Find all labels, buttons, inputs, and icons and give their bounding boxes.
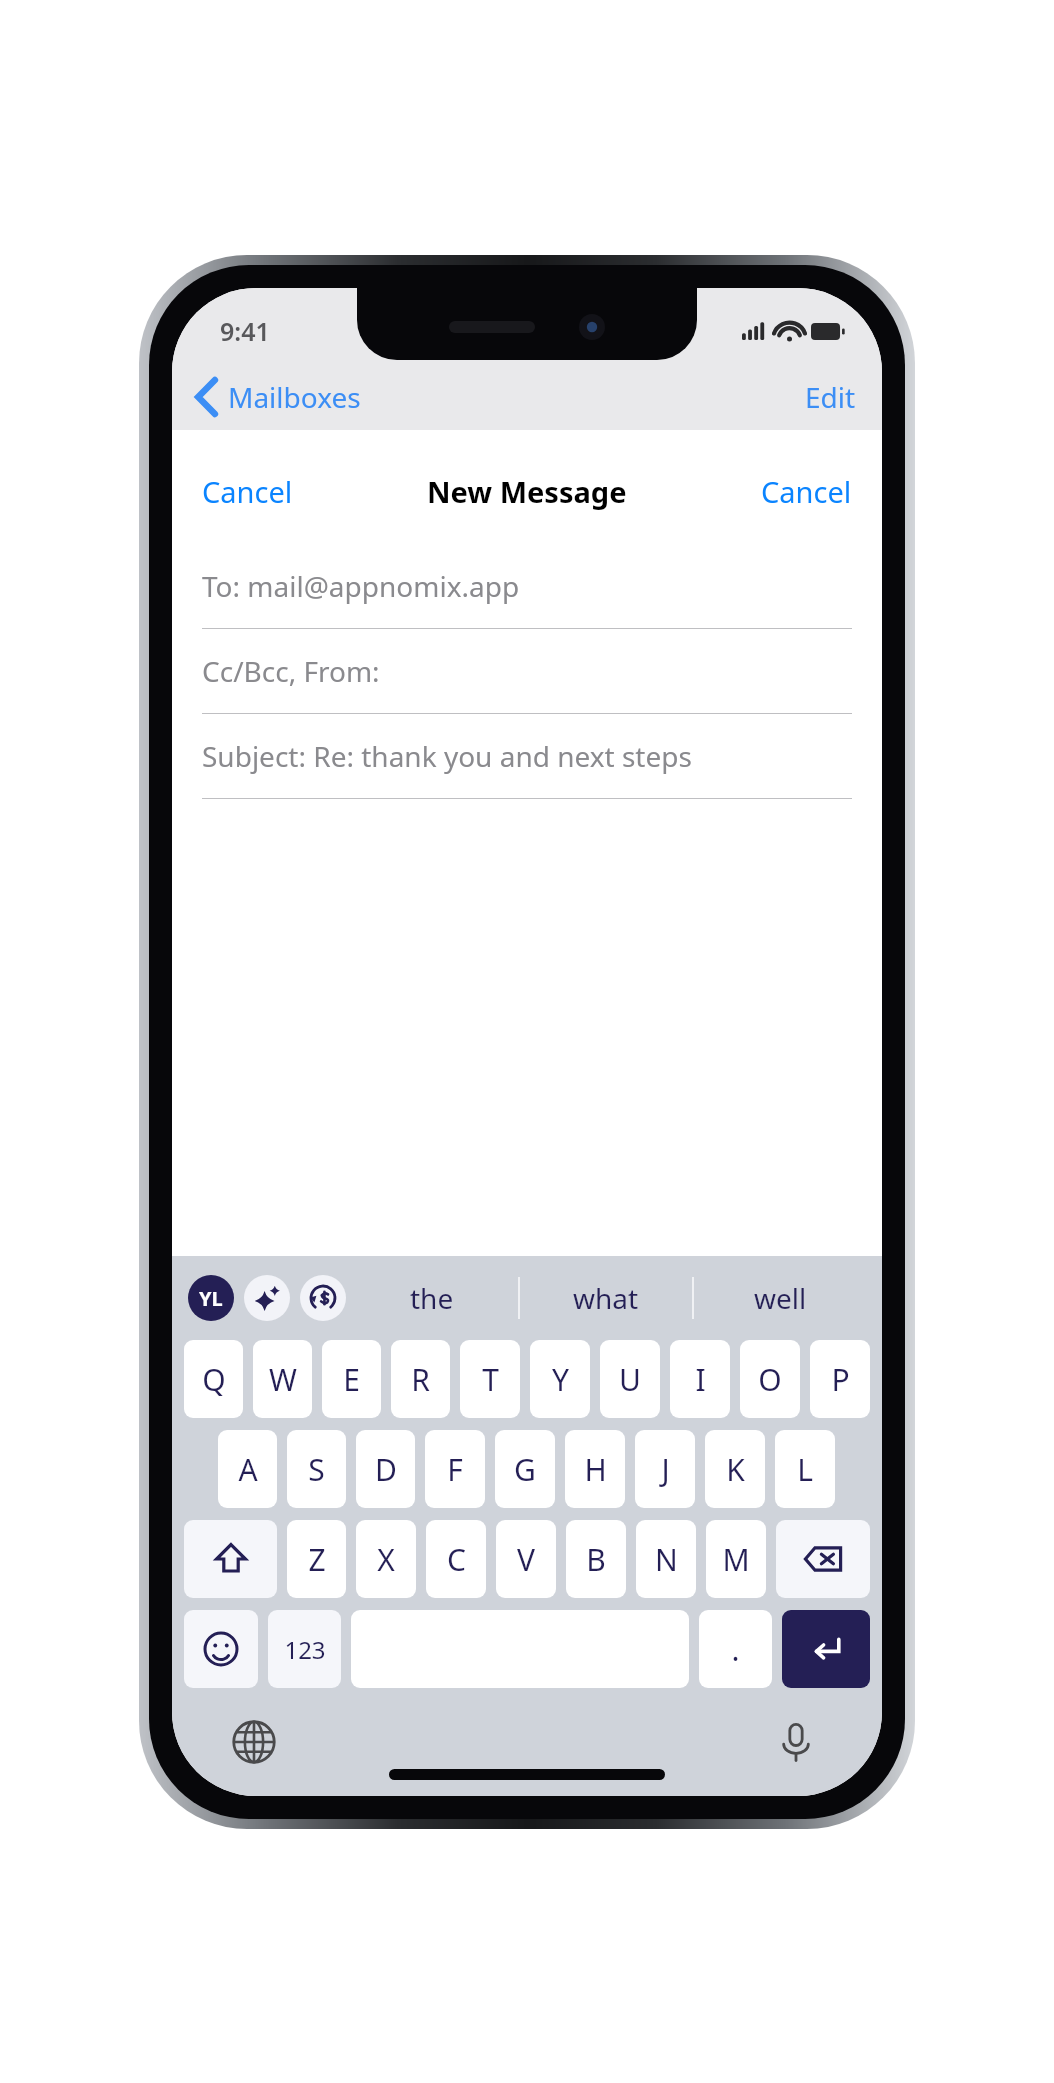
- staticText: .: [731, 1629, 740, 1670]
- button[interactable]: I: [670, 1340, 730, 1418]
- staticText: K: [726, 1449, 745, 1490]
- button[interactable]: Q: [184, 1340, 243, 1418]
- button[interactable]: Emoji: [184, 1610, 258, 1688]
- staticText: H: [584, 1449, 607, 1490]
- button[interactable]: Cancel: [761, 472, 852, 511]
- button[interactable]: C: [426, 1520, 486, 1598]
- staticText: C: [447, 1539, 466, 1580]
- staticText: X: [377, 1539, 395, 1580]
- button[interactable]: E: [322, 1340, 381, 1418]
- staticText: well: [754, 1279, 807, 1317]
- staticText: J: [661, 1449, 670, 1490]
- button[interactable]: J: [635, 1430, 695, 1508]
- button[interactable]: Y: [530, 1340, 590, 1418]
- button[interactable]: U: [600, 1340, 660, 1418]
- staticText: Mailboxes: [228, 378, 361, 416]
- button[interactable]: Change keyboard: [228, 1716, 280, 1768]
- staticText: U: [619, 1359, 641, 1400]
- staticText: W: [269, 1359, 297, 1400]
- button[interactable]: O: [740, 1340, 800, 1418]
- button[interactable]: Cancel: [202, 472, 293, 511]
- button[interactable]: AI suggestions: [244, 1275, 290, 1321]
- button[interactable]: Cc/Bcc, From:: [172, 629, 882, 714]
- button[interactable]: Shift: [184, 1520, 277, 1598]
- button[interactable]: Cashback: [300, 1275, 346, 1321]
- button[interactable]: W: [253, 1340, 312, 1418]
- staticText: V: [517, 1539, 535, 1580]
- button[interactable]: T: [460, 1340, 520, 1418]
- button[interactable]: .: [699, 1610, 772, 1688]
- staticText: Y: [552, 1359, 569, 1400]
- staticText: E: [343, 1359, 360, 1400]
- staticText: Subject: Re: thank you and next steps: [202, 737, 692, 775]
- button[interactable]: H: [565, 1430, 625, 1508]
- button[interactable]: A: [218, 1430, 277, 1508]
- button[interactable]: Backspace: [776, 1520, 870, 1598]
- button[interactable]: the: [346, 1256, 518, 1340]
- staticText: what: [573, 1279, 639, 1317]
- button[interactable]: L: [775, 1430, 835, 1508]
- button[interactable]: well: [694, 1256, 866, 1340]
- button[interactable]: R: [391, 1340, 450, 1418]
- staticText: B: [586, 1539, 606, 1580]
- button[interactable]: Return: [782, 1610, 870, 1688]
- staticText: Q: [202, 1359, 226, 1400]
- button[interactable]: Subject: Re: thank you and next steps: [172, 714, 882, 799]
- staticText: New Message: [427, 472, 627, 511]
- staticText: Cc/Bcc, From:: [202, 652, 380, 690]
- staticText: Cancel: [202, 472, 293, 511]
- staticText: A: [238, 1449, 258, 1490]
- staticText: 123: [284, 1633, 326, 1666]
- staticText: M: [722, 1539, 750, 1580]
- staticText: P: [831, 1359, 850, 1400]
- button[interactable]: V: [496, 1520, 556, 1598]
- button[interactable]: To: mail@appnomix.app: [172, 544, 882, 629]
- staticText: I: [695, 1359, 706, 1400]
- staticText: G: [514, 1449, 536, 1490]
- staticText: S: [308, 1449, 325, 1490]
- staticText: Cancel: [761, 472, 852, 511]
- button[interactable]: B: [566, 1520, 626, 1598]
- button[interactable]: F: [425, 1430, 485, 1508]
- button[interactable]: S: [287, 1430, 346, 1508]
- staticText: YL: [199, 1285, 223, 1312]
- button[interactable]: 123: [268, 1610, 341, 1688]
- button[interactable]: N: [636, 1520, 696, 1598]
- button[interactable]: D: [356, 1430, 415, 1508]
- staticText: N: [655, 1539, 678, 1580]
- button[interactable]: Mailboxes: [196, 378, 361, 416]
- staticText: Edit: [805, 378, 856, 416]
- staticText: R: [411, 1359, 430, 1400]
- staticText: To: mail@appnomix.app: [202, 567, 520, 605]
- button[interactable]: X: [356, 1520, 416, 1598]
- button[interactable]: Dictate: [770, 1716, 822, 1768]
- button[interactable]: Edit: [805, 378, 856, 416]
- staticText: D: [375, 1449, 397, 1490]
- button[interactable]: M: [706, 1520, 766, 1598]
- button[interactable]: Z: [287, 1520, 346, 1598]
- staticText: T: [482, 1359, 499, 1400]
- button[interactable]: YL: [188, 1275, 234, 1321]
- staticText: F: [447, 1449, 463, 1490]
- staticText: O: [758, 1359, 782, 1400]
- staticText: the: [410, 1279, 454, 1317]
- button[interactable]: P: [810, 1340, 870, 1418]
- staticText: 9:41: [220, 314, 270, 348]
- button[interactable]: G: [495, 1430, 555, 1508]
- button[interactable]: what: [520, 1256, 692, 1340]
- staticText: Z: [308, 1539, 326, 1580]
- staticText: L: [797, 1449, 813, 1490]
- button[interactable]: K: [705, 1430, 765, 1508]
